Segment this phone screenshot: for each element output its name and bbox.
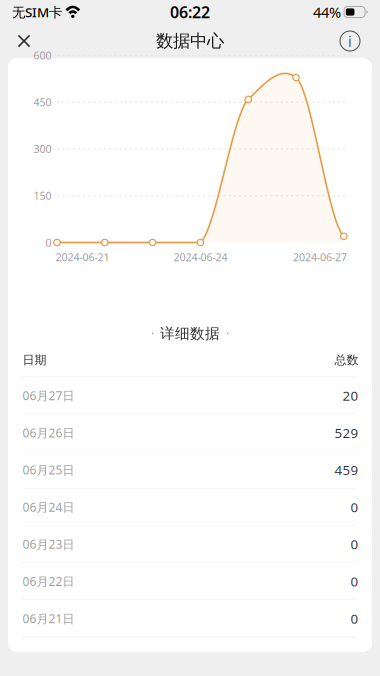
staticText: 0 (350, 610, 358, 627)
button[interactable]: 06月25日 (8, 451, 372, 488)
button[interactable]: 06月22日 (8, 563, 372, 600)
staticText: 06月23日 (22, 536, 74, 552)
staticText: 06月25日 (22, 462, 74, 478)
staticText: 0 (45, 235, 51, 250)
staticText: 44% (313, 2, 341, 22)
staticText: 600 (33, 48, 51, 62)
staticText: 总数 (334, 353, 358, 367)
staticText: 06月27日 (22, 388, 74, 403)
staticText: 06:22 (170, 1, 210, 23)
staticText: 459 (334, 461, 358, 479)
button[interactable]: 06月21日 (8, 600, 372, 637)
staticText: i (348, 31, 352, 51)
staticText: 20 (342, 387, 358, 404)
staticText: 0 (350, 498, 358, 516)
staticText: 529 (334, 424, 358, 442)
staticText: 2024-06-27 (293, 250, 347, 264)
staticText: 150 (33, 189, 51, 203)
staticText: 0 (350, 572, 358, 590)
button[interactable]: 06月23日 (8, 526, 372, 563)
staticText: 数据中心 (156, 30, 224, 52)
button[interactable]: 关闭 (3, 24, 45, 58)
staticText: · (151, 325, 154, 341)
button[interactable]: 06月27日 (8, 377, 372, 414)
staticText: 06月22日 (22, 573, 74, 589)
staticText: 2024-06-21 (55, 250, 109, 264)
staticText: 0 (350, 535, 358, 553)
staticText: 06月21日 (22, 610, 74, 626)
staticText: 06月24日 (22, 499, 74, 515)
staticText: · (226, 325, 229, 341)
staticText: 日期 (22, 353, 46, 367)
button[interactable]: 说明 (329, 24, 371, 58)
button[interactable]: 06月24日 (8, 488, 372, 525)
staticText: 详细数据 (160, 324, 220, 342)
staticText: 无SIM卡 (12, 3, 62, 21)
staticText: 450 (33, 95, 51, 109)
button[interactable]: 06月26日 (8, 414, 372, 451)
staticText: 300 (33, 142, 51, 156)
staticText: 2024-06-24 (173, 250, 227, 264)
staticText: 06月26日 (22, 425, 74, 441)
